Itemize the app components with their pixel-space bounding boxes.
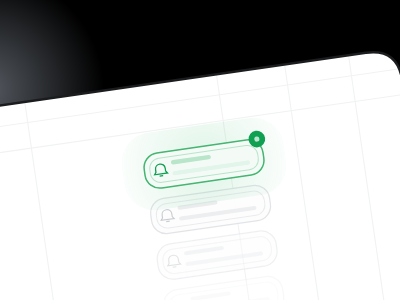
button[interactable]: Notification	[139, 177, 255, 223]
button[interactable]: New notification, unread	[134, 142, 250, 188]
button[interactable]: Notification	[149, 246, 265, 292]
button[interactable]: Notification	[144, 212, 260, 257]
